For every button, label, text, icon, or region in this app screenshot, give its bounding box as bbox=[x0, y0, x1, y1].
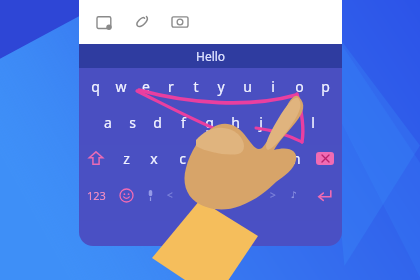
staticText: a bbox=[104, 113, 112, 132]
button[interactable]: Settings bbox=[282, 176, 306, 214]
button[interactable]: v bbox=[196, 140, 224, 176]
button[interactable]: q bbox=[83, 68, 108, 104]
button[interactable]: g bbox=[196, 104, 222, 140]
staticText: f bbox=[181, 113, 186, 132]
button[interactable]: u bbox=[234, 68, 260, 104]
staticText: g bbox=[205, 113, 214, 132]
staticText: Hello bbox=[196, 48, 226, 64]
staticText: ♪ bbox=[291, 190, 297, 200]
button[interactable]: z bbox=[113, 140, 140, 176]
staticText: i bbox=[271, 77, 275, 96]
button[interactable]: i bbox=[260, 68, 286, 104]
button[interactable]: f bbox=[170, 104, 196, 140]
button[interactable]: Stickers bbox=[91, 9, 117, 35]
button[interactable]: 123 bbox=[79, 176, 113, 214]
staticText: y bbox=[217, 77, 225, 96]
staticText: l bbox=[311, 113, 315, 132]
staticText: e bbox=[142, 77, 150, 96]
button[interactable]: s bbox=[120, 104, 145, 140]
button[interactable]: r bbox=[158, 68, 183, 104]
staticText: p bbox=[321, 77, 330, 96]
button[interactable]: Enter bbox=[306, 176, 342, 214]
button[interactable]: Attach bbox=[129, 9, 155, 35]
button[interactable]: j bbox=[248, 104, 274, 140]
button[interactable]: e bbox=[133, 68, 158, 104]
button[interactable]: c bbox=[168, 140, 196, 176]
button[interactable]: m bbox=[280, 140, 308, 176]
staticText: r bbox=[168, 77, 174, 96]
button[interactable]: x bbox=[140, 140, 168, 176]
button[interactable]: b bbox=[224, 140, 252, 176]
button[interactable]: Emoji bbox=[113, 176, 139, 214]
staticText: z bbox=[123, 149, 130, 168]
staticText: d bbox=[153, 113, 162, 132]
staticText: x bbox=[150, 149, 158, 168]
button[interactable]: h bbox=[222, 104, 248, 140]
staticText: v bbox=[206, 149, 214, 168]
staticText: o bbox=[295, 77, 304, 96]
staticText: q bbox=[91, 77, 100, 96]
button[interactable]: Shift bbox=[79, 140, 113, 176]
button[interactable]: a bbox=[95, 104, 120, 140]
button[interactable]: < bbox=[161, 176, 282, 214]
staticText: b bbox=[234, 149, 243, 168]
button[interactable]: y bbox=[208, 68, 234, 104]
button[interactable]: Hello bbox=[79, 44, 342, 68]
button[interactable]: n bbox=[252, 140, 280, 176]
staticText: k bbox=[283, 113, 291, 132]
staticText: > bbox=[270, 188, 276, 202]
staticText: h bbox=[231, 113, 240, 132]
staticText: t bbox=[193, 77, 199, 96]
staticText: s bbox=[129, 113, 136, 132]
staticText: 123 bbox=[87, 188, 106, 203]
staticText: < bbox=[167, 188, 173, 202]
button[interactable]: o bbox=[286, 68, 312, 104]
button[interactable]: d bbox=[145, 104, 170, 140]
button[interactable]: w bbox=[108, 68, 133, 104]
button[interactable]: l bbox=[300, 104, 326, 140]
button[interactable]: k bbox=[274, 104, 300, 140]
button[interactable]: t bbox=[183, 68, 208, 104]
staticText: c bbox=[179, 149, 186, 168]
staticText: w bbox=[115, 77, 127, 96]
staticText: j bbox=[259, 113, 263, 132]
button[interactable]: Camera bbox=[167, 9, 193, 35]
staticText: m bbox=[287, 149, 301, 168]
staticText: u bbox=[243, 77, 252, 96]
button[interactable]: p bbox=[312, 68, 338, 104]
button[interactable]: Voice input bbox=[139, 176, 161, 214]
button[interactable]: Backspace bbox=[308, 140, 342, 176]
